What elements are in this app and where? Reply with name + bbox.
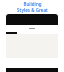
staticText: Maps — [26, 13, 38, 19]
staticText: Styles & Great — [17, 7, 48, 13]
staticText: Building — [23, 1, 42, 7]
